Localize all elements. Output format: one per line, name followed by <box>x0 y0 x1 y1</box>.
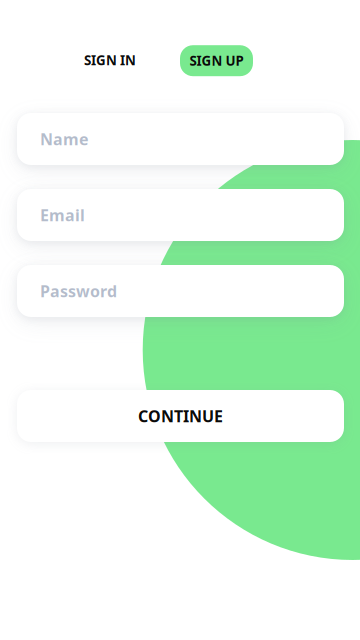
staticText: Password <box>40 280 117 302</box>
staticText: CONTINUE <box>138 405 223 427</box>
button[interactable]: CONTINUE <box>17 390 344 442</box>
button[interactable]: SIGN IN <box>75 45 145 74</box>
staticText: Email <box>40 204 85 226</box>
staticText: Name <box>40 128 89 150</box>
button[interactable]: SIGN UP <box>180 45 253 76</box>
button[interactable]: Password <box>17 265 344 317</box>
button[interactable]: Email <box>17 189 344 241</box>
staticText: SIGN UP <box>189 52 243 69</box>
staticText: SIGN IN <box>84 51 136 69</box>
button[interactable]: Name <box>17 113 344 165</box>
